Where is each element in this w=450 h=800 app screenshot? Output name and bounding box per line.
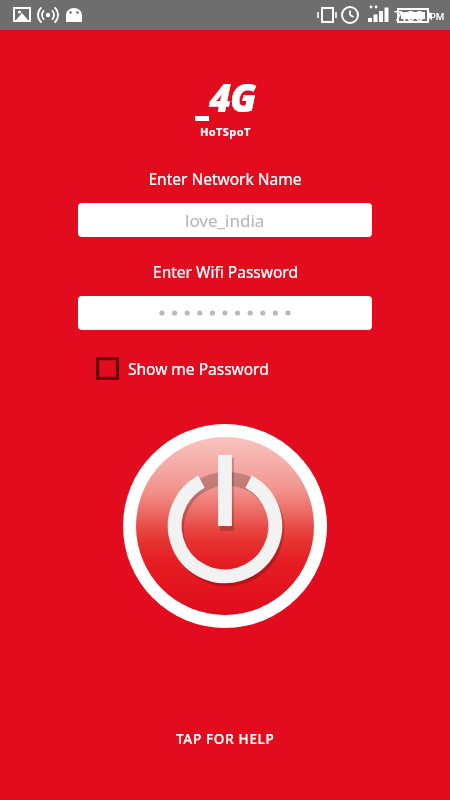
- staticText: Enter Wifi Password: [153, 261, 298, 282]
- button[interactable]: TAP FOR HELP: [162, 725, 289, 753]
- staticText: love_india: [185, 209, 265, 232]
- button[interactable]: love_india: [78, 203, 372, 237]
- staticText: HoTSpoT: [200, 124, 251, 139]
- staticText: 7:00: [394, 5, 424, 25]
- staticText: Show me Password: [128, 358, 269, 379]
- staticText: PM: [430, 10, 445, 23]
- button[interactable]: Turn hotspot on: [123, 424, 327, 628]
- button[interactable]: Show me Password: [78, 357, 372, 380]
- staticText: 4G: [209, 71, 256, 123]
- staticText: Enter Network Name: [148, 168, 302, 189]
- staticText: TAP FOR HELP: [176, 730, 275, 748]
- button[interactable]: [78, 296, 372, 330]
